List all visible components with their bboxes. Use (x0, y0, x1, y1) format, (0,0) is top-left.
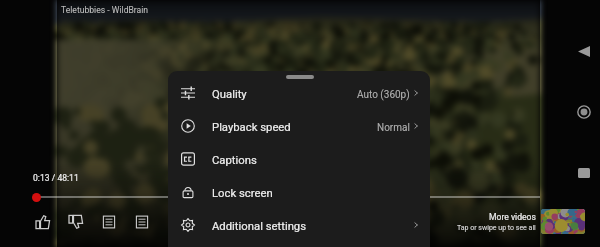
button[interactable]: Dislike (64, 210, 88, 234)
button[interactable]: Captions (168, 142, 430, 175)
staticText: Quality (212, 88, 247, 101)
staticText: Additional settings (212, 220, 307, 233)
button[interactable]: Recent apps (570, 159, 598, 187)
staticText: Lock screen (212, 187, 273, 200)
staticText: Normal (377, 122, 410, 134)
button[interactable]: Share (130, 210, 154, 234)
button[interactable]: More videos (435, 209, 585, 234)
button[interactable]: Additional settings (168, 208, 430, 241)
button[interactable]: Quality (168, 76, 430, 109)
button[interactable]: Playback speed (168, 109, 430, 142)
staticText: Playback speed (212, 121, 291, 134)
staticText: Tap or swipe up to see all (457, 224, 536, 232)
staticText: Teletubbies - WildBrain (61, 5, 149, 15)
button[interactable]: Home (570, 98, 598, 126)
button[interactable]: Like (31, 210, 55, 234)
button[interactable]: Back (570, 37, 598, 65)
button[interactable]: Lock screen (168, 175, 430, 208)
staticText: Captions (212, 154, 257, 167)
button[interactable]: Comments (97, 210, 121, 234)
staticText: Auto (360p) (357, 89, 410, 101)
staticText: More videos (489, 212, 536, 222)
staticText: 0:13 / 48:11 (33, 173, 79, 183)
